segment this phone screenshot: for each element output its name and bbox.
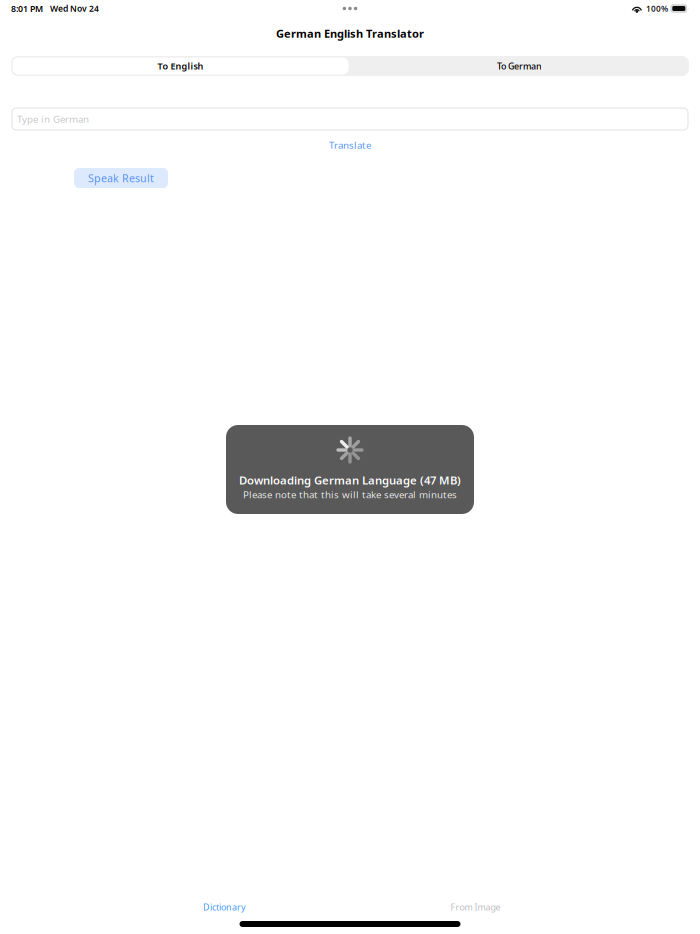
button[interactable]: To German — [350, 56, 689, 76]
staticText: Type in German — [17, 112, 89, 126]
staticText: To English — [157, 60, 203, 72]
staticText: Translate — [329, 138, 371, 152]
button[interactable]: From Image — [350, 899, 601, 915]
staticText: Dictionary — [203, 901, 246, 913]
staticText: 100% — [646, 3, 668, 14]
button[interactable]: Speak Result — [74, 168, 168, 188]
staticText: Downloading German Language (47 MB) — [239, 472, 461, 488]
staticText: 8:01 PM — [11, 2, 43, 14]
staticText: Wed Nov 24 — [50, 3, 99, 14]
staticText: Speak Result — [88, 171, 154, 185]
staticText: German English Translator — [276, 26, 424, 41]
staticText: To German — [497, 60, 542, 72]
button[interactable]: Dictionary — [99, 899, 350, 915]
button[interactable]: Translate — [329, 138, 371, 152]
textField[interactable]: Type in German — [12, 108, 688, 130]
button[interactable]: To English — [11, 56, 350, 76]
staticText: From Image — [450, 901, 500, 913]
staticText: Please note that this will take several … — [243, 488, 457, 501]
